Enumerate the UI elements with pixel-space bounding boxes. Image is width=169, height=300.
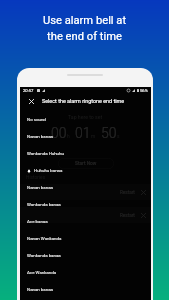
button[interactable]: Nanan Wankanda [20, 230, 151, 247]
button[interactable]: Restart [20, 184, 151, 200]
staticText: m [91, 134, 96, 140]
staticText: Use alarm bell at the end of time [0, 14, 169, 43]
staticText: Nanan banaa [27, 185, 53, 190]
button[interactable]: Nanan banaa [20, 179, 151, 196]
staticText: Select the alarm ringtone end time [42, 98, 125, 104]
staticText: Nanan Wankanda [27, 236, 62, 241]
button[interactable]: Wankanda Huhuhu [20, 145, 151, 162]
staticText: Wankanda Huhuhu [27, 151, 64, 156]
button[interactable]: Close [25, 95, 37, 107]
staticText: Nanan banaa [27, 134, 53, 139]
staticText: Huhuhu banaa [34, 168, 63, 173]
staticText: s [117, 134, 120, 140]
staticText: Nanan banaa [27, 287, 53, 292]
staticText: No sound [27, 117, 46, 122]
staticText: 56% [140, 88, 148, 93]
staticText: Wankanda banaa [27, 253, 61, 258]
button[interactable]: Ace Wankanda [20, 264, 151, 281]
button[interactable]: Wankanda banaa [20, 247, 151, 264]
staticText: 00 [51, 125, 67, 141]
button[interactable]: No sound [20, 111, 151, 128]
button[interactable]: Huhuhu banaa [20, 162, 151, 179]
button[interactable]: Restart [20, 207, 151, 223]
staticText: Ace banaa [27, 219, 48, 224]
staticText: 20:57 [23, 88, 34, 93]
staticText: 50 [101, 125, 117, 141]
button[interactable]: Wankanda banaa [20, 196, 151, 213]
staticText: Restart [120, 190, 135, 195]
button[interactable]: Nanan banaa [20, 128, 151, 145]
other: Delete [141, 190, 146, 195]
button[interactable]: Ace banaa [20, 213, 151, 230]
staticText: 01 [75, 125, 91, 141]
staticText: Restart [120, 213, 135, 218]
staticText: Tap here to set [68, 114, 103, 120]
button[interactable]: Start Now [58, 158, 114, 169]
staticText: Start Now [75, 161, 97, 167]
staticText: Wankanda banaa [27, 202, 61, 207]
other: Delete [141, 213, 146, 218]
staticText: Ace Wankanda [27, 270, 57, 275]
button[interactable]: Nanan banaa [20, 281, 151, 298]
staticText: Histories [26, 175, 46, 181]
staticText: h [67, 134, 70, 140]
